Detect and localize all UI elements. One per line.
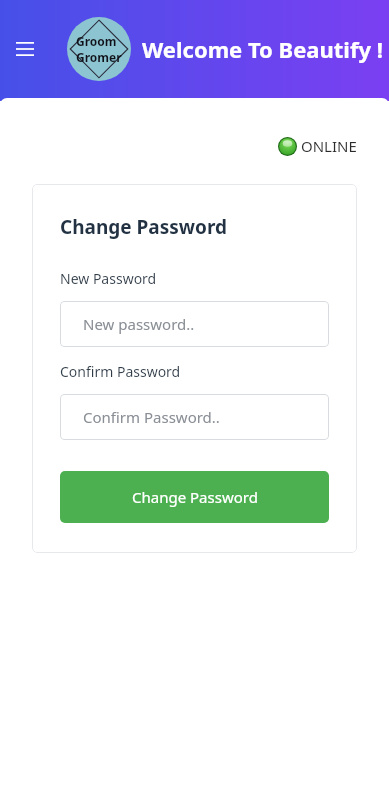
- staticText: Welcome To Beautify !: [142, 34, 383, 64]
- staticText: New Password: [60, 269, 157, 288]
- staticText: Confirm Password..: [83, 407, 220, 427]
- button[interactable]: New password..: [60, 301, 329, 347]
- button[interactable]: Open navigation menu: [10, 34, 40, 64]
- staticText: Change Password: [132, 487, 258, 507]
- button[interactable]: Change Password: [60, 471, 329, 523]
- staticText: Change Password: [60, 214, 228, 240]
- button[interactable]: Confirm Password..: [60, 394, 329, 440]
- staticText: ONLINE: [301, 136, 357, 156]
- staticText: Groom: [76, 33, 117, 49]
- button[interactable]: ONLINE: [278, 136, 357, 156]
- staticText: Confirm Password: [60, 362, 181, 381]
- button[interactable]: Groom Gromer logo: [67, 17, 131, 81]
- staticText: New password..: [83, 314, 195, 334]
- staticText: Gromer: [76, 49, 122, 65]
